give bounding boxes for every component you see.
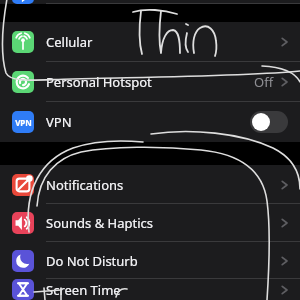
button[interactable]: VPN	[0, 102, 300, 142]
staticText: VPN	[15, 117, 32, 128]
button[interactable]: Bluetooth	[0, 0, 300, 4]
button[interactable]: Screen Time	[0, 279, 300, 300]
staticText: Off	[254, 73, 274, 91]
staticText: Sounds & Haptics	[46, 214, 154, 232]
button[interactable]: Notifications	[0, 165, 300, 204]
button[interactable]: Sounds & Haptics	[0, 204, 300, 242]
staticText: Personal Hotspot	[46, 73, 152, 91]
button[interactable]: Cellular	[0, 22, 300, 62]
staticText: VPN	[46, 113, 72, 131]
staticText: Notifications	[46, 176, 124, 194]
staticText: Screen Time	[46, 281, 121, 299]
staticText: Do Not Disturb	[46, 252, 138, 270]
staticText: Cellular	[46, 33, 93, 51]
button[interactable]: Personal Hotspot	[0, 62, 300, 102]
button[interactable]: Do Not Disturb	[0, 242, 300, 279]
button[interactable]: VPN toggle	[250, 111, 288, 133]
